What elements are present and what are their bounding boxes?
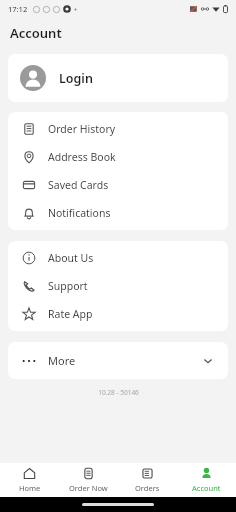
staticText: Order Now (69, 483, 108, 493)
staticText: Support (48, 279, 88, 293)
staticText: Home (19, 483, 41, 493)
button[interactable]: Orders (118, 463, 177, 497)
staticText: Orders (135, 483, 160, 493)
staticText: Saved Cards (48, 178, 109, 192)
button[interactable]: More (8, 342, 228, 379)
staticText: Account (192, 483, 221, 493)
staticText: Address Book (48, 150, 116, 164)
button[interactable]: Account (177, 463, 236, 497)
button[interactable]: About Us (8, 244, 228, 272)
button[interactable]: Notifications (8, 199, 228, 227)
button[interactable]: Rate App (8, 300, 228, 328)
button[interactable]: Order Now (59, 463, 118, 497)
button[interactable]: Address Book (8, 143, 228, 171)
staticText: Rate App (48, 307, 93, 321)
button[interactable]: Order History (8, 115, 228, 143)
staticText: Account (10, 24, 62, 42)
staticText: More (48, 353, 76, 368)
staticText: Login (59, 70, 93, 87)
staticText: About Us (48, 251, 94, 265)
staticText: 17:12 (8, 4, 28, 14)
staticText: 10.28 - 50146 (98, 388, 139, 397)
staticText: Notifications (48, 206, 111, 220)
staticText: Order History (48, 122, 116, 136)
button[interactable]: Home (0, 463, 59, 497)
button[interactable]: Saved Cards (8, 171, 228, 199)
button[interactable]: Login (8, 54, 228, 102)
button[interactable]: Support (8, 272, 228, 300)
